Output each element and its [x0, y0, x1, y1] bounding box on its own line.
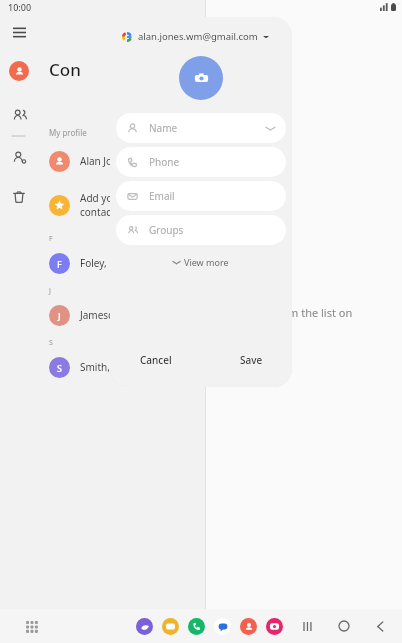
staticText: J	[49, 286, 51, 296]
button[interactable]: Add photo	[179, 56, 223, 100]
button[interactable]: Back	[370, 616, 390, 636]
staticText: act from the list on	[255, 305, 353, 320]
button[interactable]: Apps	[22, 617, 40, 635]
button[interactable]: Alan Jon	[37, 146, 205, 176]
staticText: Jameson	[80, 308, 121, 322]
button[interactable]: Gallery	[266, 618, 283, 635]
button[interactable]: Trash	[4, 182, 34, 212]
staticText: Cancel	[140, 353, 172, 367]
staticText: Foley, Ke	[80, 256, 122, 270]
button[interactable]: Messages	[214, 618, 231, 635]
button[interactable]: Phone	[116, 147, 286, 177]
staticText: F	[49, 234, 53, 244]
staticText: Email	[149, 189, 175, 203]
staticText: J	[58, 310, 61, 322]
button[interactable]: Name	[116, 113, 286, 143]
staticText: My profile	[49, 127, 87, 138]
button[interactable]: alan.jones.wm@gmail.com	[110, 27, 292, 46]
button[interactable]: Files	[162, 618, 179, 635]
button[interactable]: J	[37, 300, 205, 330]
button[interactable]: Internet	[136, 618, 153, 635]
staticText: contacts	[80, 205, 120, 219]
staticText: S	[49, 338, 53, 348]
button[interactable]: Contacts	[4, 100, 34, 130]
staticText: 10:00	[8, 1, 32, 13]
button[interactable]: Groups	[116, 215, 286, 245]
button[interactable]: Add your	[37, 186, 205, 224]
button[interactable]: My profile	[4, 56, 34, 86]
button[interactable]: Menu	[5, 18, 33, 46]
staticText: S	[57, 362, 62, 374]
button[interactable]: Manage contacts	[4, 142, 34, 172]
staticText: Alan Jon	[80, 154, 119, 168]
button[interactable]: Save	[224, 347, 279, 373]
staticText: Save	[240, 353, 263, 367]
staticText: Groups	[149, 223, 184, 237]
button[interactable]: Cancel	[124, 347, 188, 373]
button[interactable]: F	[37, 248, 205, 278]
button[interactable]: Home	[334, 616, 354, 636]
staticText: Add your	[80, 191, 123, 205]
button[interactable]: Recents	[298, 616, 318, 636]
staticText: Smith, Maria	[80, 360, 140, 374]
staticText: Phone	[149, 155, 180, 169]
button[interactable]: Phone	[188, 618, 205, 635]
staticText: F	[57, 258, 62, 270]
button[interactable]: S	[37, 352, 205, 382]
button[interactable]: Contacts	[240, 618, 257, 635]
staticText: alan.jones.wm@gmail.com	[138, 30, 258, 43]
button[interactable]: Email	[116, 181, 286, 211]
staticText: View more	[184, 256, 229, 268]
staticText: Name	[149, 121, 178, 135]
button[interactable]: View more	[165, 253, 237, 271]
staticText: Con	[49, 58, 81, 81]
